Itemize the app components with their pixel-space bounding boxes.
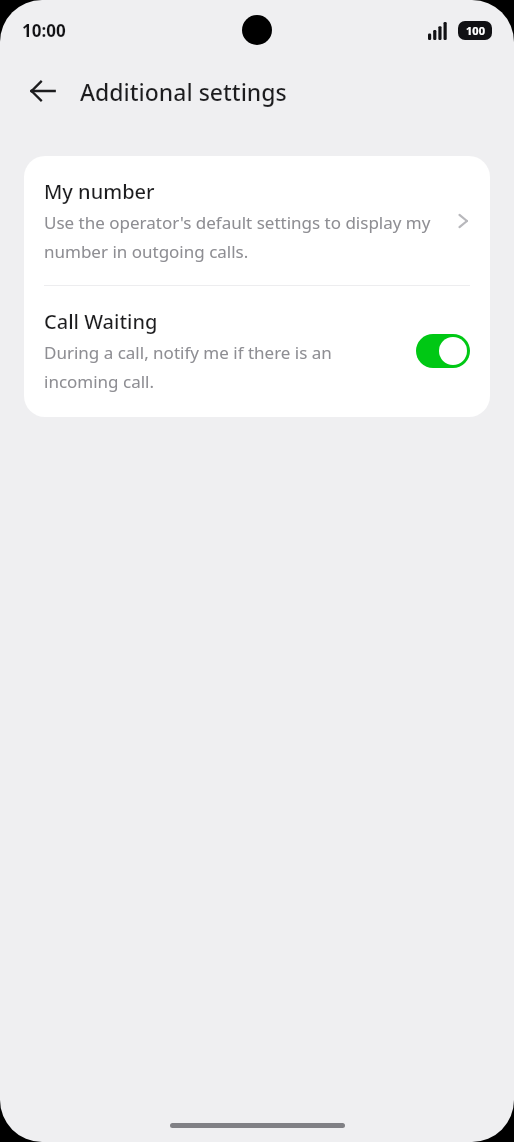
button[interactable]: My number (24, 156, 490, 285)
staticText: 10:00 (22, 19, 66, 42)
button[interactable]: Back (22, 70, 64, 112)
staticText: Use the operator's default settings to d… (44, 211, 446, 263)
staticText: Call Waiting (44, 308, 158, 335)
button[interactable]: Call Waiting toggle, on (416, 334, 470, 368)
staticText: My number (44, 178, 155, 205)
staticText: Additional settings (80, 76, 287, 107)
staticText: 100 (466, 23, 485, 38)
button[interactable]: Call Waiting (24, 286, 490, 417)
staticText: During a call, notify me if there is an … (44, 341, 406, 393)
